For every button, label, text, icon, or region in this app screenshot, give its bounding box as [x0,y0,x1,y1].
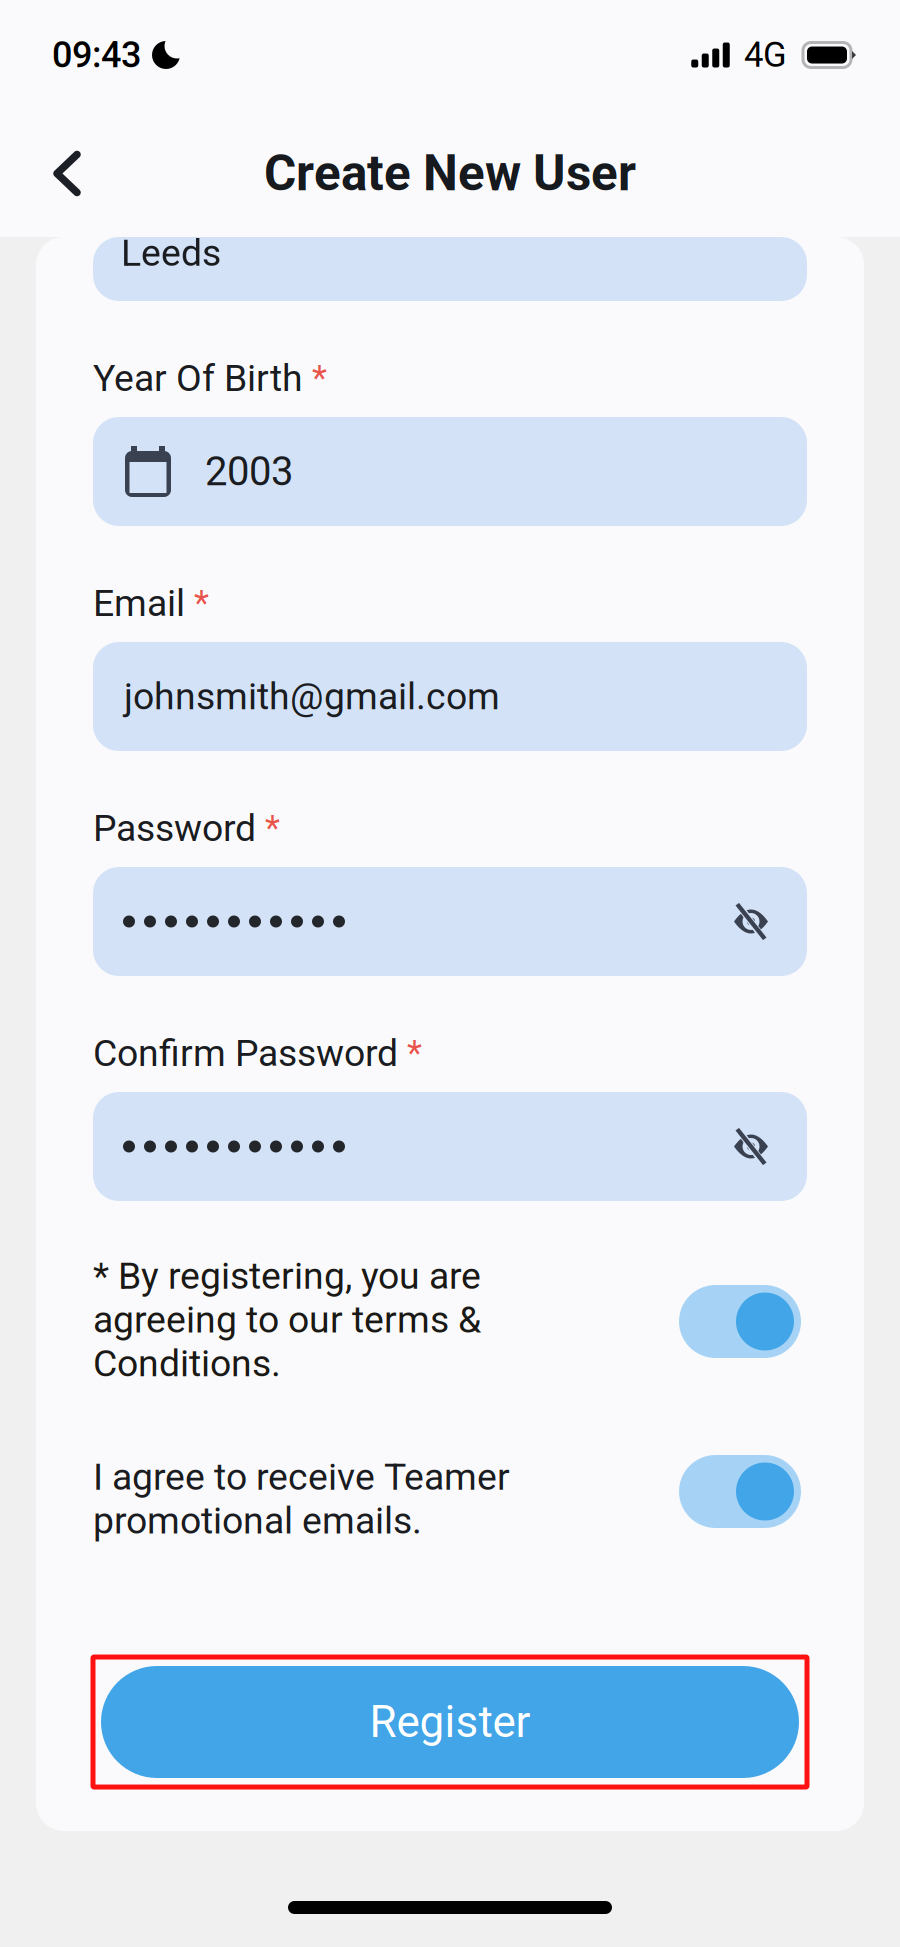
staticText: Leeds [121,231,221,275]
staticText: 2003 [205,448,293,495]
staticText: johnsmith@gmail.com [124,675,500,718]
staticText: * [312,358,327,398]
button[interactable]: Back [22,114,104,232]
button[interactable]: Show confirm password [733,1129,769,1163]
staticText: * [407,1033,422,1073]
staticText: I agree to receive Teamer promotional em… [93,1455,510,1542]
staticText: * By registering, you are agreeing to ou… [93,1254,481,1385]
button[interactable]: Agree to receive promotional emails [679,1455,801,1528]
staticText: * [265,808,280,848]
staticText: Register [369,1696,530,1748]
staticText: Confirm Password [93,1031,398,1075]
staticText: 09:43 [52,34,141,76]
staticText: * [194,583,209,623]
button[interactable]: Agree to terms and conditions [679,1285,801,1358]
button[interactable]: Register [101,1666,799,1778]
staticText: Year Of Birth [93,356,303,400]
staticText: Create New User [264,145,636,202]
staticText: Email [93,581,185,625]
staticText: Password [93,806,256,850]
button[interactable]: Show password [733,904,769,938]
staticText: 4G [744,35,787,75]
